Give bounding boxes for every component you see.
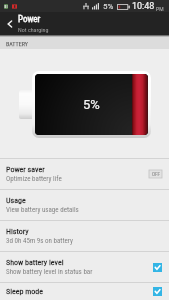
staticText: OFF (152, 171, 160, 177)
staticText: BATTERY (6, 40, 28, 47)
staticText: PM (156, 6, 164, 12)
button[interactable]: Power saver (0, 159, 169, 189)
other: Back (0, 12, 19, 35)
staticText: Power saver (6, 165, 45, 174)
staticText: Show battery level (6, 258, 64, 267)
button[interactable]: Checkbox (153, 263, 162, 272)
button[interactable]: Checkbox (153, 287, 162, 296)
staticText: Show battery level in status bar (6, 268, 93, 276)
staticText: Power (18, 14, 41, 25)
staticText: View battery usage details (6, 206, 79, 214)
staticText: 5% (103, 2, 114, 11)
staticText: 5% (83, 97, 100, 112)
button[interactable]: Back (0, 12, 169, 35)
button[interactable]: Show battery level (0, 252, 169, 282)
button[interactable]: History (0, 221, 169, 251)
staticText: Sleep mode (6, 287, 44, 296)
staticText: Optimize battery life (6, 175, 62, 183)
staticText: Usage (6, 196, 26, 205)
staticText: 10:48 (132, 1, 155, 12)
staticText: History (6, 227, 29, 236)
button[interactable]: Usage (0, 190, 169, 220)
button[interactable]: Sleep mode (0, 283, 169, 300)
staticText: 3d 0h 45m 9s on battery (6, 237, 73, 245)
button[interactable]: Power saver toggle (149, 169, 162, 179)
staticText: Not charging (18, 26, 49, 33)
